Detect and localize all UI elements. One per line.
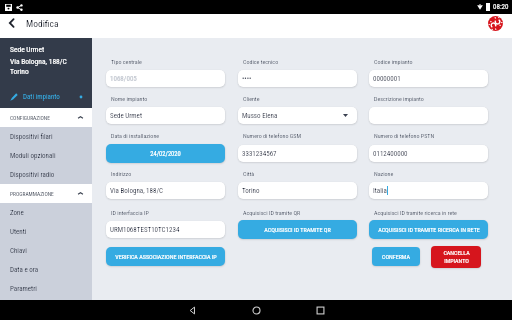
staticText: Acquisisci ID tramite QR <box>243 209 301 216</box>
staticText: ID interfaccia IP <box>111 209 149 216</box>
staticText: Via Bologna, 188/C <box>110 187 164 195</box>
staticText: PROGRAMMAZIONE <box>10 191 54 197</box>
button[interactable]: Data e ora <box>0 260 92 279</box>
staticText: CANCELLA IMPIANTO <box>443 249 470 265</box>
button[interactable]: Utenti <box>0 222 92 241</box>
staticText: CONFERMA <box>382 253 410 260</box>
staticText: Città <box>243 170 255 177</box>
staticText: 0112400000 <box>373 150 408 158</box>
staticText: Utenti <box>10 228 27 236</box>
button[interactable]: Dati impianto <box>0 89 92 105</box>
staticText: Nome impianto <box>111 95 148 102</box>
staticText: Italia <box>373 187 387 195</box>
button[interactable]: Torino <box>238 182 357 199</box>
staticText: Via Bologna, 188/C <box>10 57 67 66</box>
staticText: 1068/005 <box>110 75 137 83</box>
staticText: 00000001 <box>373 75 401 83</box>
button[interactable]: 1068/005 <box>106 70 225 87</box>
button[interactable]: URM1068TEST10TC1234 <box>106 221 225 238</box>
staticText: ACQUISISCI ID TRAMITE RICERCA IN RETE <box>378 226 480 233</box>
staticText: Codice impianto <box>374 58 413 65</box>
button[interactable]: 3331234567 <box>238 145 357 162</box>
staticText: Indirizzo <box>111 170 132 177</box>
button[interactable]: ACQUISISCI ID TRAMITE QR <box>238 220 357 239</box>
staticText: CONFIGURAZIONE <box>10 115 50 121</box>
button[interactable]: Via Bologna, 188/C <box>106 182 225 199</box>
button[interactable]: Chiavi <box>0 241 92 260</box>
staticText: Cliente <box>243 95 260 102</box>
button[interactable]: CONFERMA <box>372 247 420 266</box>
button[interactable]: VERIFICA ASSOCIAZIONE INTERFACCIA IP <box>106 247 225 266</box>
staticText: •••• <box>242 75 252 83</box>
staticText: VERIFICA ASSOCIAZIONE INTERFACCIA IP <box>115 253 217 260</box>
staticText: Numero di telefono PSTN <box>374 132 435 139</box>
staticText: Torino <box>242 187 260 195</box>
staticText: Dati impianto <box>23 93 60 101</box>
button[interactable]: CANCELLA IMPIANTO <box>431 246 481 268</box>
button[interactable]: ACQUISISCI ID TRAMITE RICERCA IN RETE <box>369 220 488 239</box>
staticText: Musso Elena <box>242 112 278 120</box>
button[interactable]: Recent apps <box>288 300 352 320</box>
staticText: Chiavi <box>10 247 27 255</box>
staticText: Data e ora <box>10 266 39 274</box>
staticText: Moduli opzionali <box>10 152 56 160</box>
staticText: Data di installazione <box>111 132 160 139</box>
button[interactable]: Musso Elena <box>238 107 357 124</box>
button[interactable]: Home <box>224 300 288 320</box>
staticText: Sede Urmet <box>110 112 142 120</box>
staticText: Dispositivi radio <box>10 171 55 179</box>
button[interactable] <box>369 107 488 124</box>
staticText: 3331234567 <box>242 150 277 158</box>
staticText: Nazione <box>374 170 394 177</box>
button[interactable]: 00000001 <box>369 70 488 87</box>
staticText: Modifica <box>26 18 59 29</box>
staticText: 24/02/2020 <box>150 150 181 158</box>
button[interactable]: Modifica <box>0 14 65 38</box>
button[interactable]: CONFIGURAZIONE <box>0 108 92 127</box>
staticText: Tipo centrale <box>111 58 142 65</box>
staticText: Parametri <box>10 285 37 293</box>
button[interactable]: Parametri <box>0 279 92 298</box>
button[interactable]: Back <box>160 300 224 320</box>
button[interactable]: 24/02/2020 <box>106 144 225 163</box>
staticText: Sede Urmet <box>10 45 45 54</box>
staticText: URM1068TEST10TC1234 <box>110 226 180 234</box>
button[interactable]: Urmet logo <box>488 16 503 31</box>
staticText: 08:20 <box>493 3 509 11</box>
button[interactable]: •••• <box>238 70 357 87</box>
button[interactable]: Zone <box>0 203 92 222</box>
button[interactable]: Dispositivi filari <box>0 127 92 146</box>
button[interactable]: PROGRAMMAZIONE <box>0 184 92 203</box>
staticText: Acquisisci ID tramite ricerca in rete <box>374 209 457 216</box>
button[interactable]: Sede Urmet <box>106 107 225 124</box>
button[interactable]: Dispositivi radio <box>0 165 92 184</box>
staticText: ACQUISISCI ID TRAMITE QR <box>264 226 331 233</box>
staticText: Codice tecnico <box>243 58 279 65</box>
button[interactable]: Italia <box>369 182 488 199</box>
staticText: Torino <box>10 67 29 76</box>
staticText: Zone <box>10 209 24 217</box>
staticText: Numero di telefono GSM <box>243 132 302 139</box>
button[interactable]: Moduli opzionali <box>0 146 92 165</box>
staticText: Descrizione impianto <box>374 95 424 102</box>
button[interactable]: 0112400000 <box>369 145 488 162</box>
staticText: Dispositivi filari <box>10 133 53 141</box>
